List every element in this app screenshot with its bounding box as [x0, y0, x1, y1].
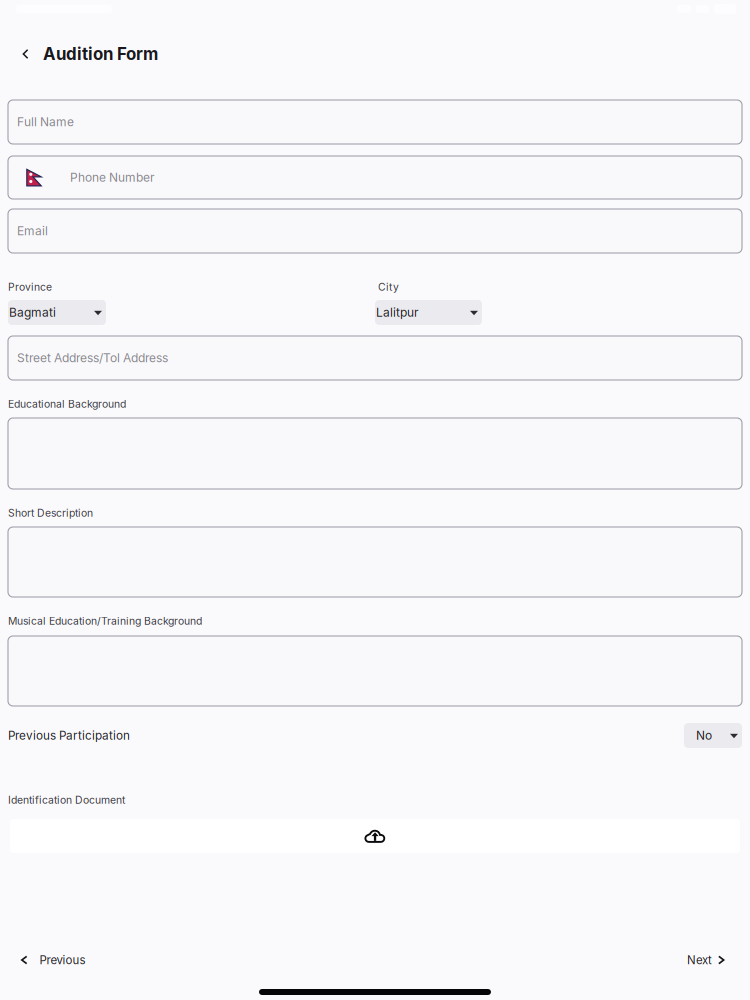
- button[interactable]: Phone Number: [8, 156, 742, 199]
- staticText: Phone Number: [70, 170, 155, 185]
- staticText: Lalitpur: [376, 305, 419, 320]
- button[interactable]: Full Name: [8, 100, 742, 144]
- staticText: Email: [17, 224, 48, 238]
- staticText: Musical Education/Training Background: [8, 615, 202, 627]
- button[interactable]: [8, 418, 742, 489]
- staticText: City: [378, 281, 399, 293]
- button[interactable]: [8, 527, 742, 597]
- button[interactable]: Bagmati: [8, 300, 106, 325]
- button[interactable]: Email: [8, 209, 742, 253]
- staticText: Street Address/Tol Address: [17, 351, 168, 365]
- staticText: Full Name: [17, 115, 74, 129]
- staticText: Previous Participation: [8, 728, 130, 743]
- staticText: Identification Document: [8, 794, 125, 806]
- staticText: Short Description: [8, 507, 93, 519]
- staticText: Previous: [39, 953, 85, 967]
- staticText: Province: [8, 281, 52, 293]
- staticText: No: [696, 728, 712, 743]
- staticText: Audition Form: [43, 44, 158, 64]
- staticText: Bagmati: [9, 305, 56, 320]
- button[interactable]: Previous: [0, 952, 140, 968]
- button[interactable]: Back: [19, 45, 32, 63]
- button[interactable]: Upload identification document: [10, 819, 740, 853]
- button[interactable]: No: [684, 723, 742, 748]
- staticText: Educational Background: [8, 398, 126, 410]
- staticText: Next: [687, 953, 712, 967]
- button[interactable]: Next: [610, 952, 750, 968]
- button[interactable]: [8, 636, 742, 706]
- button[interactable]: Street Address/Tol Address: [8, 336, 742, 380]
- button[interactable]: Lalitpur: [375, 300, 482, 325]
